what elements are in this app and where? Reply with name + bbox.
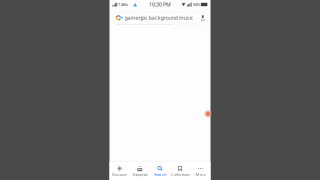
staticText: 10:30 PM	[149, 1, 171, 8]
button[interactable]: More	[190, 162, 210, 180]
staticText: Search	[154, 172, 166, 177]
staticText: 7.4K/s	[118, 2, 128, 7]
button[interactable]: Search	[150, 162, 170, 180]
button[interactable]: gamerjps background music	[112, 13, 208, 23]
staticText: Snapshot	[132, 172, 147, 177]
button[interactable]: Collections	[170, 162, 190, 180]
staticText: gamerjps background music	[125, 14, 194, 21]
staticText: 94%	[193, 2, 200, 7]
button[interactable]: Discover	[109, 162, 130, 180]
staticText: Discover	[112, 172, 128, 177]
staticText: More	[195, 172, 205, 177]
button[interactable]: Snapshot	[130, 162, 150, 180]
staticText: Collections	[171, 172, 190, 177]
